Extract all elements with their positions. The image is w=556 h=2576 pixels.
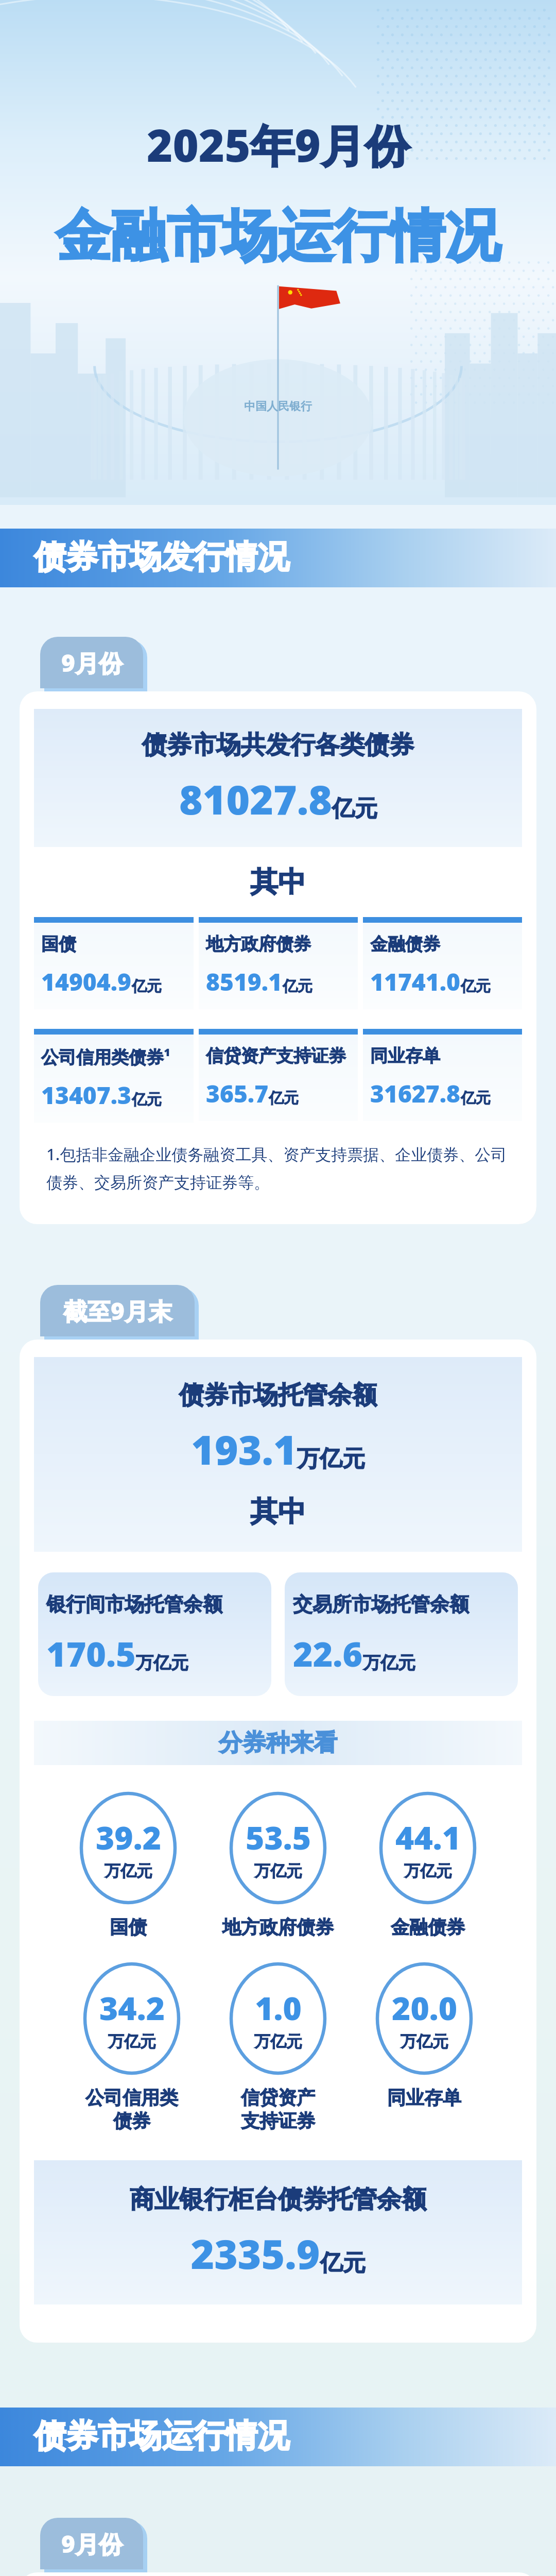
button[interactable]: 53.5 — [222, 1792, 334, 1939]
staticText: 9月份 — [61, 647, 123, 679]
staticText: 交易所市场托管余额 — [293, 1592, 469, 1617]
button[interactable]: 同业存单 — [363, 1029, 522, 1121]
staticText: 银行间市场托管余额 — [46, 1592, 222, 1617]
staticText: 22.6 — [293, 1630, 363, 1676]
staticText: 万亿元 — [254, 1861, 302, 1881]
button[interactable]: 银行间市场托管余额 — [38, 1572, 271, 1696]
staticText: 31627.8 — [370, 1077, 461, 1110]
staticText: 国债 — [110, 1916, 147, 1939]
staticText: 万亿元 — [404, 1861, 452, 1881]
staticText: 2335.9 — [190, 2226, 320, 2281]
staticText: 11741.0 — [370, 965, 461, 998]
staticText: 万亿元 — [363, 1652, 415, 1674]
button[interactable]: 地方政府债券 — [199, 917, 358, 1009]
staticText: 14904.9 — [41, 965, 132, 998]
button[interactable]: 交易所市场托管余额 — [285, 1572, 518, 1696]
staticText: 亿元 — [461, 1089, 491, 1108]
staticText: 同业存单 — [387, 2086, 461, 2109]
button[interactable]: 债券市场运行情况 — [0, 2408, 556, 2466]
staticText: 亿元 — [461, 977, 491, 996]
button[interactable]: 9月份 — [40, 637, 143, 688]
staticText: 信贷资产支持证券 — [206, 1045, 346, 1067]
button[interactable]: 9月份 — [40, 2518, 143, 2569]
button[interactable]: 39.2 — [80, 1792, 177, 1939]
button[interactable]: 公司信用类债券¹ — [34, 1029, 194, 1123]
staticText: 39.2 — [96, 1816, 161, 1859]
staticText: 1.0 — [255, 1986, 302, 2029]
button[interactable]: 截至9月末 — [40, 1285, 195, 1336]
staticText: 亿元 — [132, 1090, 162, 1109]
staticText: 信贷资产 支持证券 — [241, 2086, 315, 2132]
button[interactable]: 34.2 — [83, 1962, 180, 2132]
staticText: 万亿元 — [108, 2031, 156, 2052]
staticText: 34.2 — [99, 1986, 165, 2029]
staticText: 44.1 — [395, 1816, 461, 1859]
staticText: 债券市场托管余额 — [179, 1380, 377, 1411]
staticText: 亿元 — [283, 977, 312, 996]
staticText: 万亿元 — [136, 1652, 188, 1674]
staticText: 截至9月末 — [63, 1295, 172, 1327]
staticText: 81027.8 — [179, 772, 332, 826]
staticText: 9月份 — [61, 2528, 123, 2560]
staticText: 其中 — [250, 1494, 306, 1529]
staticText: 金融债券 — [391, 1916, 465, 1939]
staticText: 公司信用类 债券 — [85, 2086, 178, 2132]
staticText: 365.7 — [206, 1077, 269, 1110]
staticText: 商业银行柜台债券托管余额 — [130, 2184, 426, 2215]
staticText: 8519.1 — [206, 965, 283, 998]
staticText: 债券市场共发行各类债券 — [142, 730, 414, 760]
staticText: 亿元 — [269, 1089, 299, 1108]
staticText: 13407.3 — [41, 1079, 132, 1111]
staticText: 债券市场运行情况 — [34, 2416, 289, 2456]
staticText: 债券市场发行情况 — [34, 537, 289, 577]
staticText: 地方政府债券 — [206, 933, 311, 955]
button[interactable]: 金融债券 — [363, 917, 522, 1009]
staticText: 1.包括非金融企业债务融资工具、资产支持票据、企业债券、公司债券、交易所资产支持… — [46, 1143, 510, 1193]
button[interactable]: 债券市场发行情况 — [0, 529, 556, 587]
staticText: 地方政府债券 — [222, 1916, 334, 1939]
button[interactable]: 44.1 — [379, 1792, 476, 1939]
button[interactable]: 国债 — [34, 917, 194, 1009]
button[interactable]: 1.0 — [230, 1962, 326, 2132]
staticText: 万亿元 — [401, 2031, 448, 2052]
staticText: 53.5 — [246, 1816, 311, 1859]
staticText: 分券种来看 — [219, 1728, 337, 1758]
staticText: 亿元 — [320, 2249, 366, 2277]
staticText: 万亿元 — [297, 1445, 365, 1473]
staticText: 公司信用类债券¹ — [41, 1045, 171, 1069]
button[interactable]: 20.0 — [376, 1962, 473, 2109]
staticText: 20.0 — [392, 1986, 457, 2029]
staticText: 亿元 — [132, 977, 162, 996]
staticText: 金融债券 — [370, 933, 440, 955]
staticText: 万亿元 — [254, 2031, 302, 2052]
staticText: 中国人民银行 — [244, 399, 312, 414]
staticText: 同业存单 — [370, 1045, 440, 1067]
staticText: 国债 — [41, 933, 76, 955]
staticText: 2025年9月份 — [147, 114, 409, 175]
button[interactable]: 信贷资产支持证券 — [199, 1029, 358, 1121]
staticText: 193.1 — [191, 1422, 297, 1477]
staticText: 万亿元 — [105, 1861, 152, 1881]
staticText: 170.5 — [46, 1630, 136, 1676]
staticText: 亿元 — [332, 794, 377, 823]
staticText: 金融市场运行情况 — [56, 201, 500, 272]
staticText: 其中 — [34, 865, 522, 900]
